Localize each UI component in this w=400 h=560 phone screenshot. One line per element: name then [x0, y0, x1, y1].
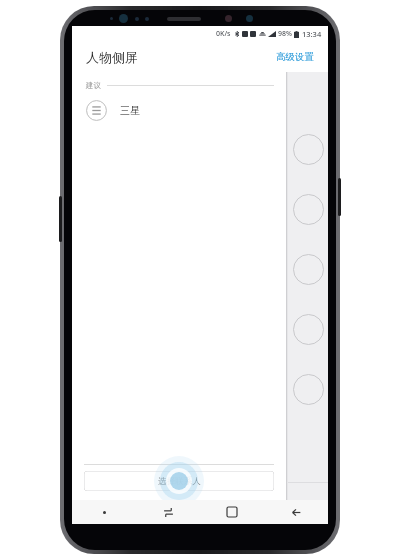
staticText: 三星 — [120, 104, 140, 117]
button[interactable]: 三星 — [72, 97, 286, 124]
button[interactable]: Recents — [136, 500, 200, 524]
button[interactable]: 高级设置 — [274, 47, 316, 67]
staticText: 建议 — [86, 81, 101, 90]
staticText: 选择联系人 — [158, 476, 201, 487]
button[interactable]: Home — [200, 500, 264, 524]
button[interactable]: Menu dot — [72, 500, 136, 524]
staticText: 0K/s — [216, 29, 231, 39]
staticText: 13:34 — [302, 29, 322, 39]
staticText: 98% — [278, 29, 292, 39]
staticText: 高级设置 — [276, 51, 314, 63]
button[interactable]: 选择联系人 — [84, 471, 274, 491]
staticText: 人物侧屏 — [86, 49, 138, 65]
button[interactable]: Back — [264, 500, 328, 524]
